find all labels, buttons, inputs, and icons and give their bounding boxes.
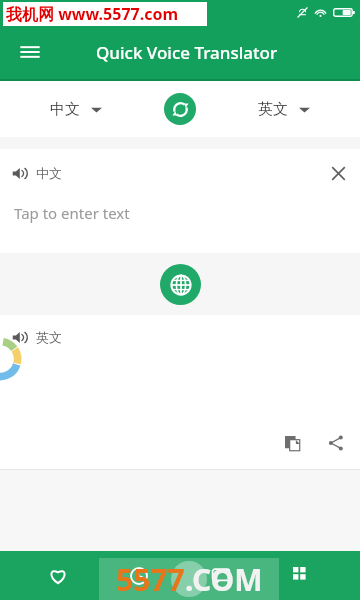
staticText: Quick Voice Translator [96, 41, 278, 64]
button[interactable]: Swap languages [152, 81, 208, 137]
button[interactable]: 中文 [0, 81, 152, 137]
button[interactable]: Favorites [34, 552, 82, 600]
button[interactable]: 英文 [12, 315, 360, 359]
button[interactable]: History [115, 552, 163, 600]
staticText: 中文 [36, 165, 62, 181]
staticText: Tap to enter text [14, 203, 130, 223]
staticText: 我机网 www.5577.com [6, 3, 179, 25]
button[interactable]: Conversation mode [197, 552, 245, 600]
staticText: 英文 [36, 329, 62, 345]
button[interactable]: Share translation [316, 423, 356, 463]
staticText: 英文 [258, 100, 288, 119]
button[interactable]: More options [278, 552, 326, 600]
button[interactable]: Tap to enter text [0, 197, 360, 253]
button[interactable]: Translate [158, 262, 202, 306]
button[interactable]: 中文 [12, 165, 62, 181]
staticText: 5577 [116, 559, 185, 600]
button[interactable]: Copy translation [272, 423, 312, 463]
staticText: 中文 [50, 100, 80, 119]
staticText: .COM [185, 559, 263, 600]
button[interactable]: Clear text [316, 151, 360, 195]
button[interactable]: Open navigation menu [8, 30, 52, 74]
button[interactable]: 英文 [208, 81, 360, 137]
